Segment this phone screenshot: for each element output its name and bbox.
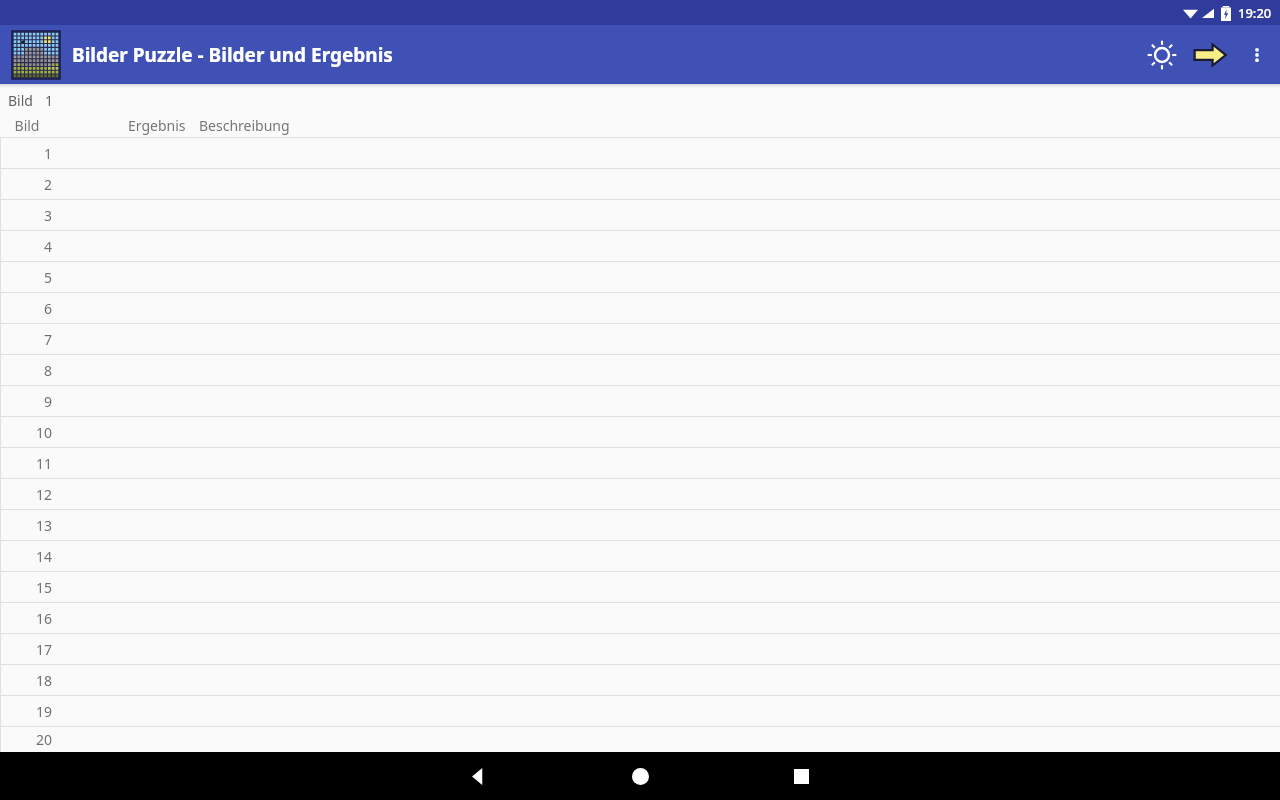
staticText: 10 [0, 423, 52, 442]
staticText: 16 [0, 609, 52, 628]
staticText: 17 [0, 640, 52, 659]
button[interactable]: 20 [0, 727, 1280, 752]
button[interactable]: 4 [0, 231, 1280, 261]
staticText: 14 [0, 547, 52, 566]
staticText: 4 [0, 237, 52, 256]
button[interactable]: Back [454, 752, 502, 800]
button[interactable]: More options [1234, 32, 1280, 78]
staticText: 5 [0, 268, 52, 287]
staticText: 7 [0, 330, 52, 349]
button[interactable]: 16 [0, 603, 1280, 633]
staticText: Bilder Puzzle - Bilder und Ergebnis [72, 42, 393, 68]
staticText: 19:20 [1238, 4, 1272, 22]
button[interactable]: 9 [0, 386, 1280, 416]
button[interactable]: 3 [0, 200, 1280, 230]
button[interactable]: 19 [0, 696, 1280, 726]
staticText: Ergebnis [128, 116, 186, 135]
staticText: 13 [0, 516, 52, 535]
button[interactable]: 13 [0, 510, 1280, 540]
staticText: 6 [0, 299, 52, 318]
button[interactable]: 12 [0, 479, 1280, 509]
button[interactable]: 2 [0, 169, 1280, 199]
button[interactable]: 5 [0, 262, 1280, 292]
staticText: 1 [45, 91, 54, 110]
staticText: 3 [0, 206, 52, 225]
button[interactable]: 6 [0, 293, 1280, 323]
staticText: 1 [0, 144, 52, 163]
staticText: Bild [8, 91, 33, 110]
button[interactable]: 18 [0, 665, 1280, 695]
staticText: 18 [0, 671, 52, 690]
button[interactable]: Home [616, 752, 664, 800]
staticText: 2 [0, 175, 52, 194]
button[interactable]: 10 [0, 417, 1280, 447]
staticText: 15 [0, 578, 52, 597]
button[interactable]: 17 [0, 634, 1280, 664]
button[interactable]: Next [1186, 31, 1234, 79]
button[interactable]: Brightness [1138, 31, 1186, 79]
staticText: 12 [0, 485, 52, 504]
button[interactable]: 11 [0, 448, 1280, 478]
staticText: 20 [0, 730, 52, 749]
button[interactable]: 15 [0, 572, 1280, 602]
staticText: 11 [0, 454, 52, 473]
staticText: Bild [0, 116, 54, 135]
button[interactable]: Recent apps [777, 752, 825, 800]
staticText: 19 [0, 702, 52, 721]
staticText: 8 [0, 361, 52, 380]
staticText: Beschreibung [199, 116, 290, 135]
button[interactable]: 8 [0, 355, 1280, 385]
staticText: 9 [0, 392, 52, 411]
button[interactable]: 14 [0, 541, 1280, 571]
